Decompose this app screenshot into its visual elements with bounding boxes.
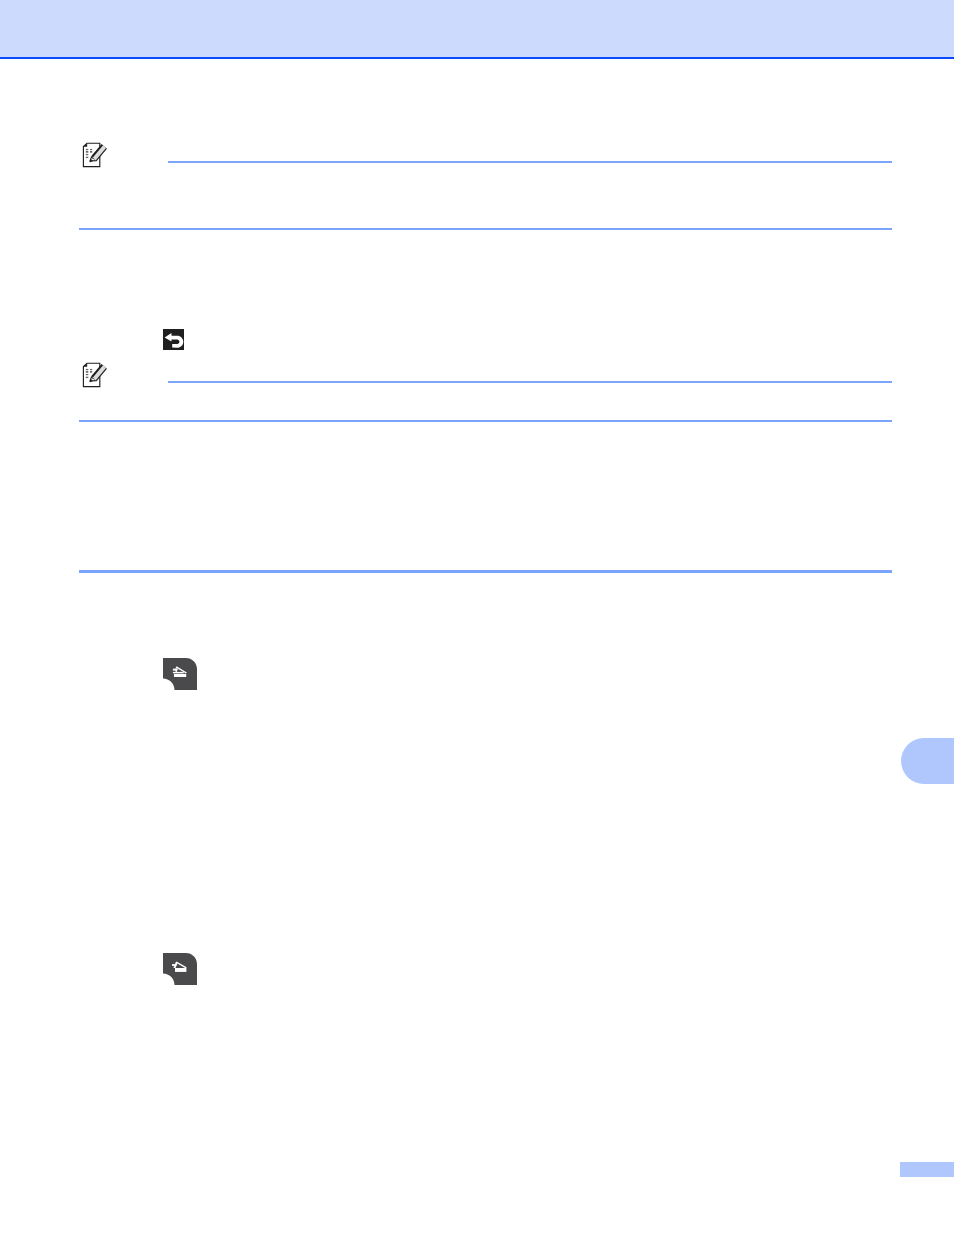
button[interactable]: Scan: [163, 658, 197, 690]
button[interactable]: Note: [81, 141, 109, 169]
button[interactable]: Scan: [163, 953, 197, 985]
button[interactable]: Chapter tab: [901, 738, 954, 784]
button[interactable]: Note: [81, 361, 109, 389]
button[interactable]: Back: [163, 329, 184, 350]
